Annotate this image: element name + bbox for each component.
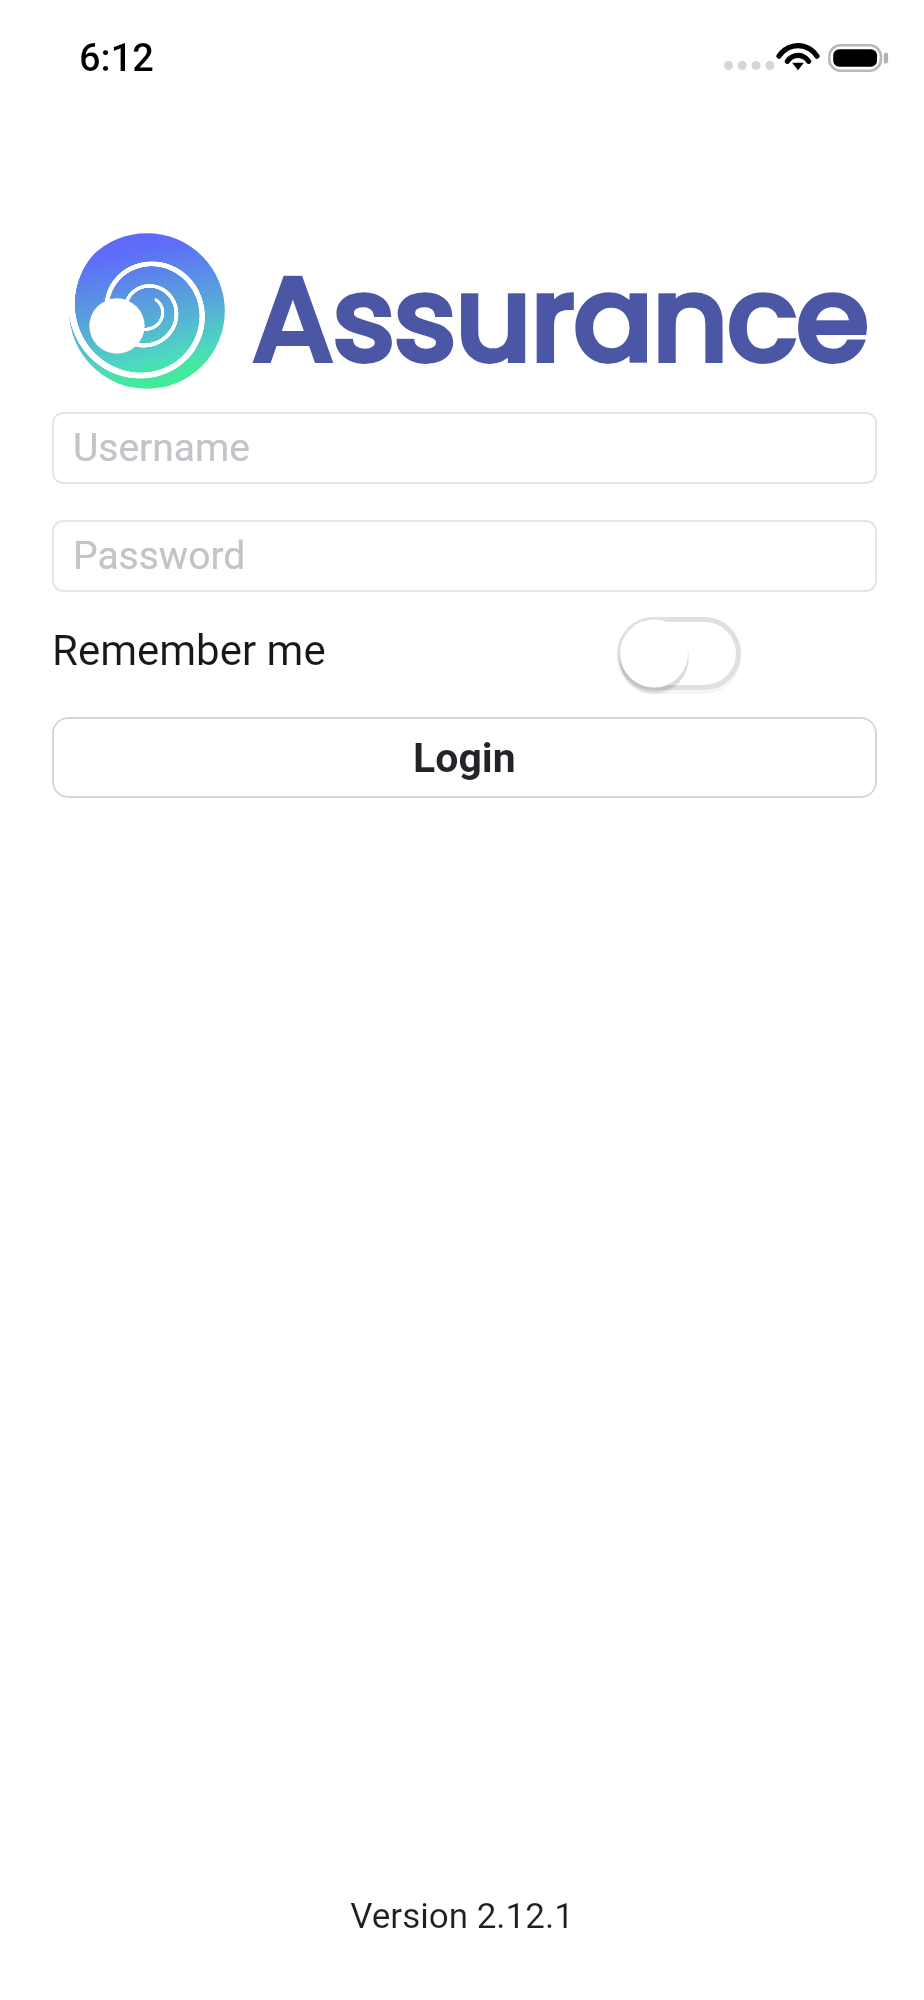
button[interactable]: Username (52, 412, 877, 484)
staticText: Username (73, 425, 250, 471)
staticText: Login (413, 734, 516, 782)
staticText: 6:12 (79, 36, 154, 81)
staticText: Version 2.12.1 (0, 1896, 924, 1937)
button[interactable]: Password (52, 520, 877, 592)
other: Battery (828, 44, 890, 72)
button[interactable]: Remember me (617, 617, 741, 691)
staticText: Remember me (52, 626, 326, 675)
staticText: Password (73, 533, 246, 579)
staticText: Assurance (251, 235, 867, 393)
other: Wi-Fi (780, 42, 816, 70)
button[interactable]: Login (52, 717, 877, 798)
other: Signal (724, 61, 774, 70)
